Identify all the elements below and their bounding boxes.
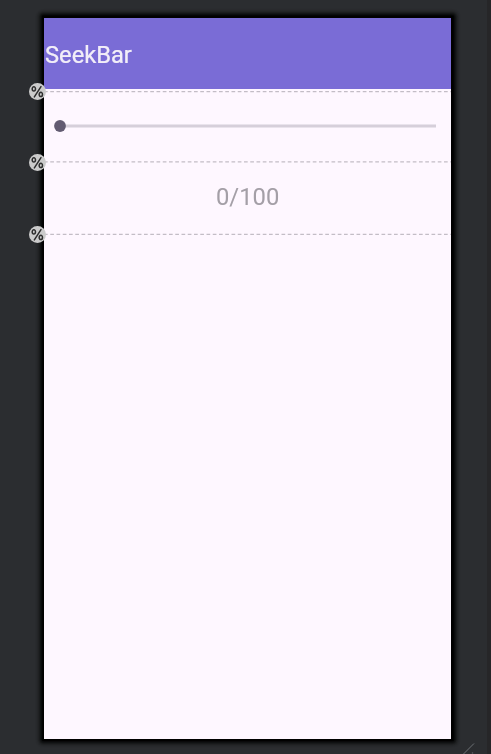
button[interactable]: SeekBar slider, 0 of 100	[60, 114, 436, 138]
button[interactable]: Percent guideline	[29, 83, 46, 100]
button[interactable]: Percent guideline	[29, 226, 46, 243]
button[interactable]: Resize preview	[458, 740, 478, 754]
button[interactable]: SeekBar	[44, 18, 451, 89]
button[interactable]: 0/100	[44, 182, 451, 212]
button[interactable]: Percent guideline	[29, 154, 46, 171]
staticText: 0/100	[216, 183, 280, 211]
staticText: SeekBar	[45, 41, 132, 69]
